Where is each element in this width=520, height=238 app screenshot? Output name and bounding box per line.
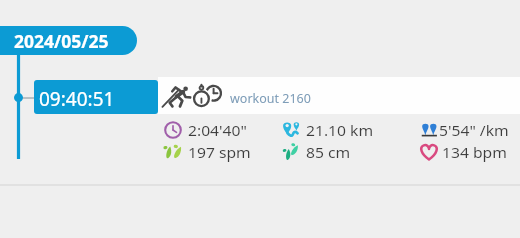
staticText: 5'54" /km xyxy=(439,122,510,140)
staticText: 09:40:51 xyxy=(39,86,115,112)
button[interactable]: 09:40:51 xyxy=(34,80,158,114)
button[interactable]: 2024/05/25 xyxy=(0,26,137,55)
button[interactable]: 21.10 km xyxy=(280,117,398,142)
staticText: 21.10 km xyxy=(306,122,373,140)
staticText: 85 cm xyxy=(306,144,351,162)
staticText: 197 spm xyxy=(188,144,252,162)
staticText: 134 bpm xyxy=(442,144,507,162)
button[interactable]: workout 2160 xyxy=(162,77,520,113)
button[interactable]: 5'54" /km xyxy=(411,117,520,142)
staticText: 2024/05/25 xyxy=(14,29,109,53)
button[interactable]: 2:04'40" xyxy=(162,117,280,142)
button[interactable]: 197 spm xyxy=(162,139,280,164)
staticText: workout 2160 xyxy=(230,90,311,107)
staticText: 2:04'40" xyxy=(188,122,247,140)
button[interactable]: 85 cm xyxy=(280,139,398,164)
button[interactable]: 134 bpm xyxy=(411,139,520,164)
